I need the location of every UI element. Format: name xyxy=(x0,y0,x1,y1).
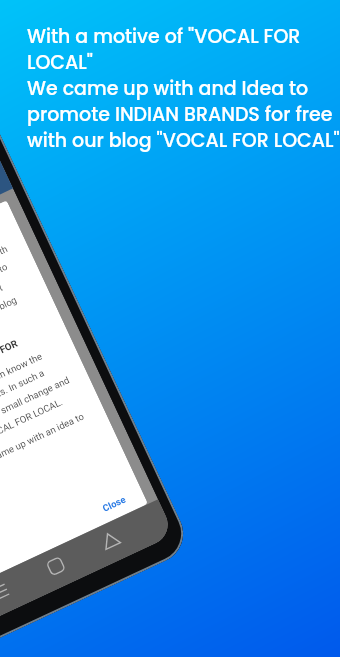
staticText: Hello Everyone, Welcome to VOCAL FOR LOC… xyxy=(0,214,11,322)
staticText: Close xyxy=(101,493,128,514)
staticText: With a motive of "VOCAL FOR LOCAL" We ca… xyxy=(27,23,340,154)
staticText: Many of the people do not even know the … xyxy=(0,344,79,480)
staticText: In this COVID-19 Pandemic we came up wit… xyxy=(0,243,39,394)
staticText: Why the name given as VOCAL FOR xyxy=(0,337,20,414)
staticText: With this motive we came up with an idea… xyxy=(0,410,86,499)
